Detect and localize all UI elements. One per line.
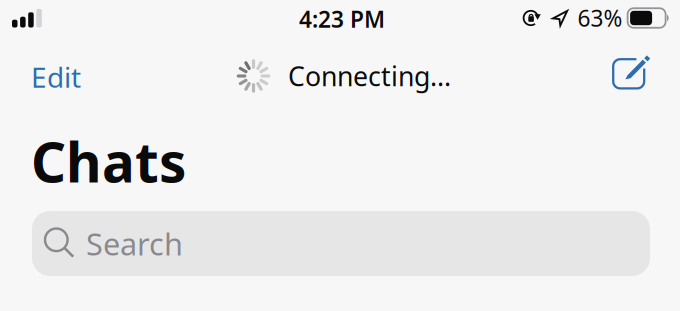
staticText: 4:23 PM [299,4,385,34]
button[interactable]: Search [32,211,650,276]
staticText: Connecting... [288,58,451,94]
staticText: Search [86,223,183,264]
button[interactable]: New message [607,49,651,93]
staticText: 63% [578,3,623,33]
staticText: Edit [31,58,81,96]
staticText: Chats [31,125,186,198]
button[interactable]: Edit [31,55,107,99]
